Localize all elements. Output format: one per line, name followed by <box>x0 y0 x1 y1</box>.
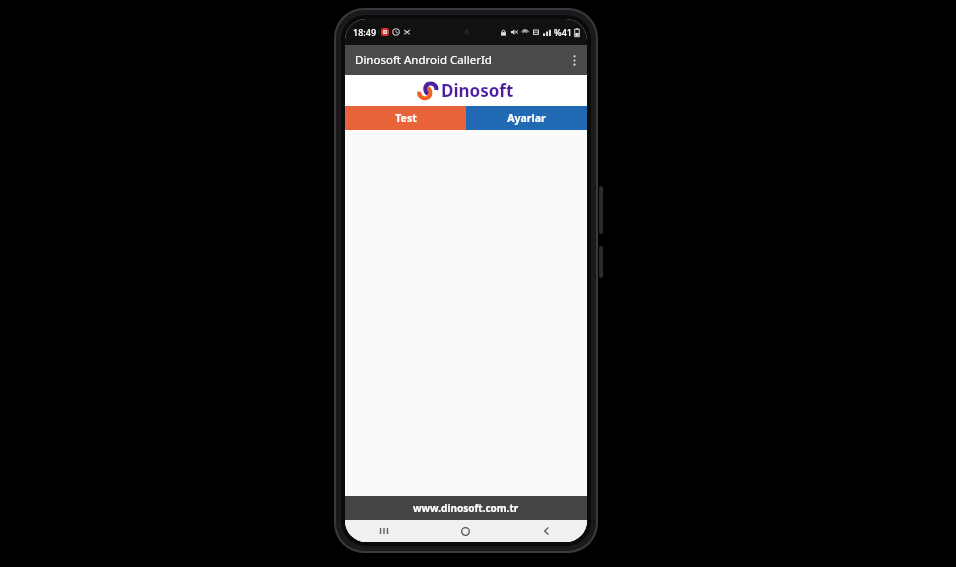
staticText: Dinosoft Android CallerId <box>355 52 492 68</box>
button[interactable]: More options <box>561 45 587 75</box>
staticText: Dinosoft <box>441 79 514 102</box>
staticText: 18:49 <box>353 26 377 38</box>
button[interactable]: www.dinosoft.com.tr <box>345 496 587 520</box>
staticText: Ayarlar <box>507 111 546 125</box>
staticText: www.dinosoft.com.tr <box>413 501 519 515</box>
staticText: D <box>383 28 388 36</box>
button[interactable]: Back <box>506 520 587 542</box>
button[interactable]: Test <box>345 106 466 130</box>
staticText: Test <box>395 111 417 125</box>
button[interactable]: Recent apps <box>345 520 425 542</box>
button[interactable]: Home <box>425 520 506 542</box>
button[interactable]: Ayarlar <box>466 106 587 130</box>
staticText: %41 <box>554 26 572 38</box>
